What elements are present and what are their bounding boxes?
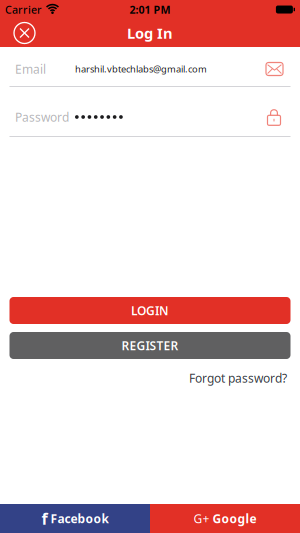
staticText: Log In <box>127 23 173 43</box>
staticText: Email <box>15 61 46 77</box>
staticText: Forgot password? <box>189 370 287 386</box>
staticText: 2:01 PM <box>129 2 170 17</box>
staticText: G+ <box>193 510 209 526</box>
staticText: harshil.vbtechlabs@gmail.com <box>75 63 207 75</box>
staticText: LOGIN <box>131 302 169 318</box>
button[interactable]: Email field <box>0 62 300 76</box>
staticText: REGISTER <box>121 337 178 353</box>
button[interactable]: Password field <box>0 110 300 124</box>
staticText: Password <box>15 109 69 125</box>
button[interactable]: LOGIN <box>9 297 290 324</box>
button[interactable]: Forgot password? <box>189 370 287 386</box>
staticText: f <box>41 508 47 529</box>
staticText: Carrier <box>5 2 42 17</box>
button[interactable]: f <box>0 504 150 533</box>
button[interactable]: G+ <box>150 504 300 533</box>
button[interactable]: REGISTER <box>9 332 290 359</box>
button[interactable]: Close <box>0 22 35 43</box>
staticText: Facebook <box>50 510 108 526</box>
staticText: Google <box>212 510 256 526</box>
